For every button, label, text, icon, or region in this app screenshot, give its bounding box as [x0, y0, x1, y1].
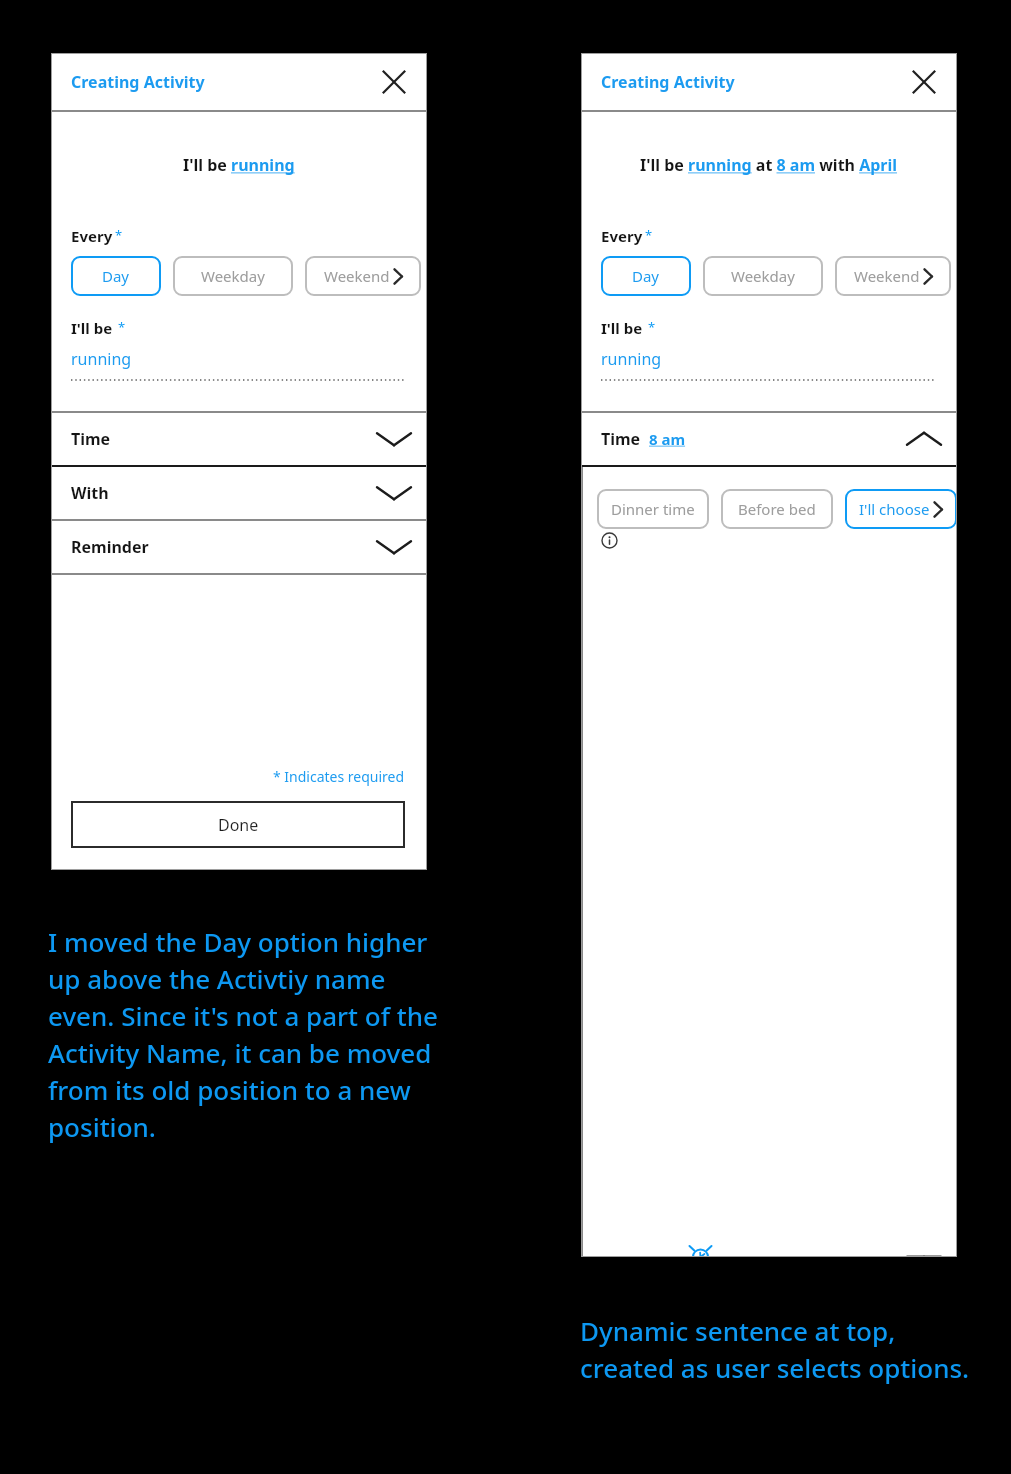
button[interactable]: Creating Activity [71, 71, 205, 93]
staticText: Reminder [71, 536, 149, 558]
staticText: running [71, 348, 132, 370]
staticText: Every [601, 226, 643, 246]
staticText: I'll be [71, 318, 113, 338]
staticText: Dinner time [611, 499, 695, 519]
staticText: I'll choose [859, 499, 930, 519]
staticText: Weekday [731, 266, 795, 286]
button[interactable]: Weekday [173, 256, 293, 296]
button[interactable]: Close [907, 65, 941, 99]
button[interactable]: Time [71, 413, 411, 465]
staticText: Dynamic sentence at top, created as user… [580, 1313, 972, 1386]
staticText: Time [601, 428, 641, 450]
button[interactable]: Weekend [305, 256, 421, 296]
button[interactable]: Done [71, 801, 405, 848]
staticText: I'll be [601, 318, 643, 338]
staticText: Every [71, 226, 113, 246]
button[interactable]: Weekend [835, 256, 951, 296]
staticText: * [118, 318, 126, 336]
staticText: Weekend [324, 266, 390, 286]
staticText: Done [218, 814, 259, 836]
staticText: I moved the Day option higher up above t… [48, 924, 440, 1145]
staticText: * Indicates required [273, 767, 405, 786]
button[interactable]: Day [71, 256, 161, 296]
staticText: Day [632, 266, 660, 286]
staticText: I'll be running at 8 am with April [640, 154, 898, 176]
staticText: running [601, 348, 662, 370]
button[interactable]: Before bed [721, 489, 833, 529]
staticText: Day [102, 266, 130, 286]
staticText: Time [71, 428, 111, 450]
button[interactable]: With [71, 467, 411, 519]
staticText: * [645, 226, 653, 244]
staticText: * [648, 318, 656, 336]
button[interactable]: I'll choose [845, 489, 957, 529]
button[interactable]: Weekday [703, 256, 823, 296]
staticText: With [71, 482, 109, 504]
button[interactable]: Day [601, 256, 691, 296]
staticText: Weekday [201, 266, 265, 286]
staticText: * [115, 226, 123, 244]
staticText: 8 am [649, 429, 686, 449]
staticText: Weekend [854, 266, 920, 286]
button[interactable]: Time [601, 413, 941, 465]
button[interactable]: Reminder [71, 521, 411, 573]
button[interactable]: Creating Activity [601, 71, 735, 93]
staticText: I'll be running [183, 154, 295, 176]
button[interactable]: Dinner time [597, 489, 709, 529]
staticText: Before bed [738, 499, 816, 519]
button[interactable]: Close [377, 65, 411, 99]
